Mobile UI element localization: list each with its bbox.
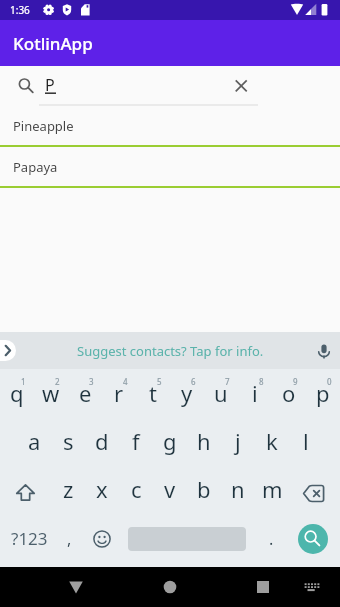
staticText: 4 <box>123 376 128 387</box>
button[interactable]: Suggest contacts? Tap for info. <box>77 342 264 360</box>
button[interactable]: Back <box>56 567 96 607</box>
button[interactable]: Home <box>150 567 190 607</box>
staticText: 3 <box>89 376 94 387</box>
button[interactable]: More suggestions <box>0 340 16 361</box>
button[interactable]: ?123 <box>0 513 51 561</box>
button[interactable]: k <box>255 417 289 465</box>
staticText: r <box>114 378 124 408</box>
button[interactable]: , <box>51 513 85 561</box>
button[interactable]: i <box>238 369 272 417</box>
staticText: 9 <box>293 376 298 387</box>
button[interactable]: l <box>289 417 323 465</box>
button[interactable]: m <box>255 465 289 513</box>
staticText: k <box>266 426 278 456</box>
staticText: Pineapple <box>13 117 74 135</box>
button[interactable]: Recent apps <box>243 567 283 607</box>
button[interactable]: Pineapple <box>0 106 340 147</box>
staticText: w <box>42 378 60 408</box>
staticText: 2 <box>55 376 60 387</box>
button[interactable]: Papaya <box>0 147 340 188</box>
staticText: m <box>262 474 283 504</box>
button[interactable]: p <box>306 369 340 417</box>
button[interactable]: x <box>85 465 119 513</box>
staticText: h <box>197 426 211 456</box>
staticText: e <box>79 378 92 408</box>
button[interactable]: Change keyboard <box>291 567 331 607</box>
staticText: o <box>282 378 296 408</box>
button[interactable]: v <box>153 465 187 513</box>
button[interactable]: c <box>119 465 153 513</box>
staticText: 6 <box>191 376 196 387</box>
staticText: . <box>269 528 274 550</box>
staticText: , <box>67 528 72 550</box>
button[interactable]: a <box>17 417 51 465</box>
staticText: c <box>131 474 142 504</box>
staticText: i <box>252 378 258 408</box>
button[interactable]: r <box>102 369 136 417</box>
button[interactable]: z <box>51 465 85 513</box>
staticText: Papaya <box>13 158 58 176</box>
button[interactable]: e <box>68 369 102 417</box>
staticText: x <box>96 474 108 504</box>
button[interactable]: . <box>255 513 289 561</box>
button[interactable]: Space <box>119 513 255 561</box>
staticText: g <box>163 426 177 456</box>
staticText: 8 <box>259 376 264 387</box>
button[interactable]: Backspace <box>289 465 340 513</box>
button[interactable]: s <box>51 417 85 465</box>
button[interactable]: Shift <box>0 465 51 513</box>
button[interactable]: d <box>85 417 119 465</box>
staticText: j <box>235 426 241 456</box>
staticText: v <box>164 474 176 504</box>
staticText: 1:36 <box>10 3 30 17</box>
staticText: f <box>132 426 140 456</box>
staticText: z <box>63 474 74 504</box>
button[interactable]: t <box>136 369 170 417</box>
staticText: l <box>303 426 309 456</box>
staticText: P <box>45 74 55 96</box>
button[interactable]: b <box>187 465 221 513</box>
button[interactable]: q <box>0 369 34 417</box>
staticText: a <box>28 426 41 456</box>
staticText: 0 <box>327 376 332 387</box>
staticText: 5 <box>157 376 162 387</box>
staticText: n <box>231 474 245 504</box>
button[interactable]: n <box>221 465 255 513</box>
staticText: t <box>149 378 157 408</box>
staticText: 7 <box>225 376 230 387</box>
staticText: 1 <box>21 376 26 387</box>
button[interactable]: o <box>272 369 306 417</box>
staticText: b <box>197 474 211 504</box>
button[interactable]: Search <box>298 524 328 554</box>
button[interactable]: Voice input <box>313 340 335 362</box>
button[interactable]: w <box>34 369 68 417</box>
staticText: y <box>181 378 193 408</box>
staticText: d <box>95 426 109 456</box>
staticText: ?123 <box>11 527 48 550</box>
staticText: u <box>214 378 228 408</box>
button[interactable]: h <box>187 417 221 465</box>
staticText: p <box>316 378 330 408</box>
button[interactable]: j <box>221 417 255 465</box>
staticText: s <box>63 426 74 456</box>
button[interactable]: Emoji <box>85 513 119 561</box>
button[interactable]: y <box>170 369 204 417</box>
button[interactable]: g <box>153 417 187 465</box>
staticText: KotlinApp <box>13 32 93 55</box>
staticText: q <box>10 378 24 408</box>
button[interactable]: u <box>204 369 238 417</box>
button[interactable]: f <box>119 417 153 465</box>
